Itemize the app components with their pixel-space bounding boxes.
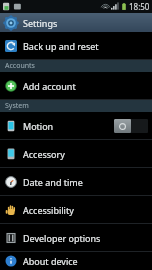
button[interactable]: Developer options <box>0 224 152 251</box>
staticText: Accounts <box>5 61 35 71</box>
staticText: Settings <box>23 17 58 29</box>
staticText: Accessory <box>23 148 148 160</box>
button[interactable]: Back up and reset <box>0 32 152 59</box>
button[interactable]: Add account <box>0 72 152 99</box>
button[interactable]: Date and time <box>0 168 152 195</box>
button[interactable]: Motion toggle <box>114 119 148 133</box>
staticText: About device <box>23 255 148 267</box>
button[interactable]: Accessibility <box>0 196 152 223</box>
staticText: Accessibility <box>23 204 148 216</box>
button[interactable]: Settings <box>0 13 152 32</box>
staticText: 18:50 <box>129 1 150 12</box>
staticText: System <box>5 101 29 111</box>
staticText: Back up and reset <box>23 40 148 52</box>
staticText: Add account <box>23 80 148 92</box>
staticText: Motion <box>23 120 114 132</box>
button[interactable]: Accessory <box>0 140 152 167</box>
button[interactable]: About device <box>0 252 152 270</box>
staticText: Developer options <box>23 232 148 244</box>
button[interactable]: Motion <box>0 112 152 139</box>
staticText: Date and time <box>23 176 148 188</box>
